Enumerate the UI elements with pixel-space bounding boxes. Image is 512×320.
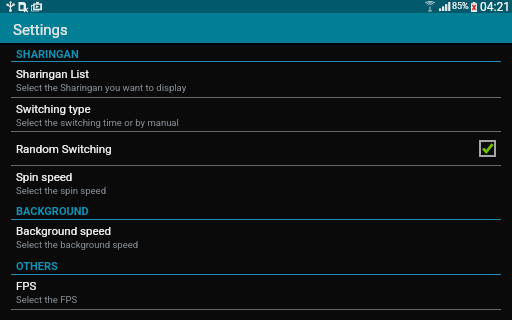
other: USB connected	[6, 1, 15, 12]
staticText: BACKGROUND	[16, 205, 89, 218]
staticText: Sharingan List	[16, 67, 90, 80]
staticText: SHARINGAN	[16, 48, 79, 61]
other: Random Switching toggle	[479, 140, 496, 157]
button[interactable]: Background speed	[0, 220, 512, 254]
other: Battery 85 percent	[471, 2, 477, 12]
staticText: FPS	[16, 279, 37, 292]
other: Screenshot captured	[31, 1, 42, 12]
staticText: Random Switching	[16, 142, 112, 155]
other: Mobile signal	[439, 2, 451, 11]
button[interactable]: FPS	[0, 275, 512, 310]
button[interactable]: Random Switching	[0, 132, 512, 166]
staticText: 85%	[452, 1, 469, 12]
staticText: Spin speed	[16, 170, 73, 183]
other: Storage	[18, 1, 28, 12]
button[interactable]: Sharingan List	[0, 62, 512, 98]
staticText: Settings	[13, 21, 68, 39]
staticText: Select the spin speed	[16, 185, 107, 196]
staticText: Switching type	[16, 102, 91, 115]
button[interactable]: Switching type	[0, 98, 512, 132]
other: Wi-Fi	[425, 1, 435, 12]
button[interactable]: Spin speed	[0, 166, 512, 200]
staticText: Background speed	[16, 224, 112, 237]
staticText: Select the FPS	[16, 294, 78, 305]
staticText: Select the Sharingan you want to display	[16, 82, 187, 93]
staticText: Select the switching time or by manual	[16, 117, 179, 128]
staticText: 04:21	[480, 0, 510, 13]
staticText: OTHERS	[16, 260, 58, 273]
staticText: Select the background speed	[16, 239, 139, 250]
